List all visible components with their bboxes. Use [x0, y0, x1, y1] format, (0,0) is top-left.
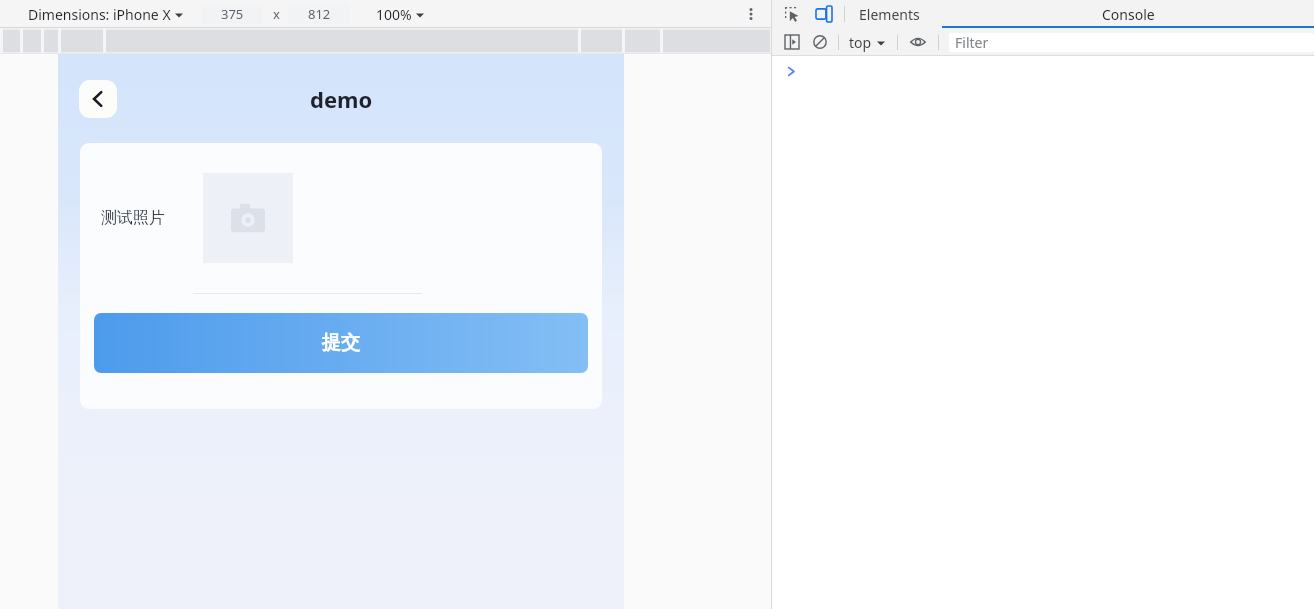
staticText: 测试照片	[101, 208, 165, 228]
button[interactable]: Clear console	[810, 32, 830, 52]
staticText: x	[273, 5, 280, 23]
button[interactable]: 812	[288, 4, 350, 24]
button[interactable]: More options	[739, 2, 763, 26]
button[interactable]: 375	[201, 4, 263, 24]
button[interactable]: Live expressions	[908, 32, 928, 52]
staticText: Dimensions: iPhone X	[28, 5, 171, 24]
staticText: 375	[221, 5, 244, 23]
button[interactable]: Elements	[859, 0, 920, 28]
button[interactable]: top	[849, 33, 885, 52]
staticText: 提交	[322, 331, 360, 355]
button[interactable]: Toggle device toolbar	[813, 3, 835, 25]
button[interactable]: 100%	[376, 5, 424, 24]
button[interactable]: Console	[942, 0, 1314, 28]
button[interactable]: Show console sidebar	[782, 32, 802, 52]
staticText: top	[849, 33, 872, 52]
button[interactable]: 提交	[94, 313, 588, 373]
staticText: 100%	[376, 5, 412, 24]
staticText: 812	[308, 5, 331, 23]
staticText: demo	[310, 84, 373, 114]
staticText: Filter	[955, 33, 989, 52]
button[interactable]: 测试照片	[80, 143, 602, 293]
button[interactable]: Back	[79, 80, 117, 118]
button[interactable]: Filter	[949, 33, 1314, 52]
button[interactable]: Dimensions: iPhone X	[28, 5, 183, 24]
staticText: Console	[1102, 5, 1155, 24]
staticText: Elements	[859, 5, 920, 24]
button[interactable]: Inspect element	[781, 3, 803, 25]
